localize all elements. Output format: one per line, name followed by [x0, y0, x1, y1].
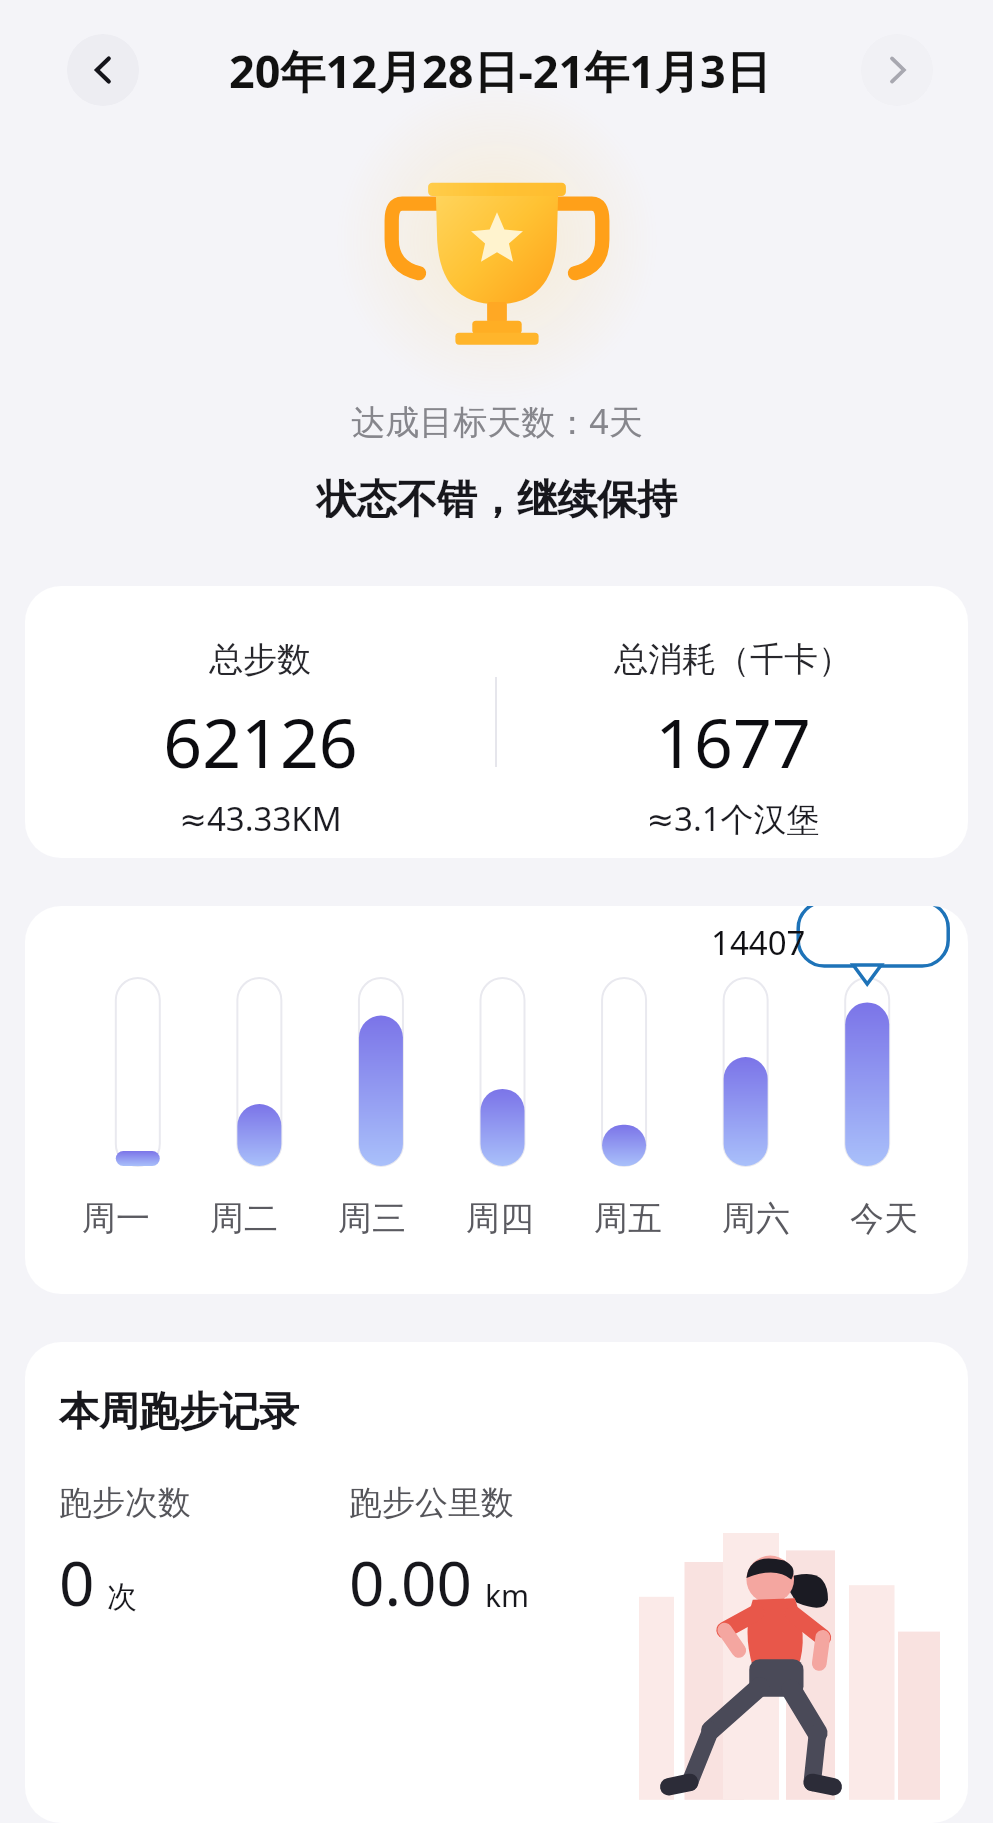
button[interactable]: Previous week	[67, 34, 139, 106]
staticText: 本周跑步记录	[59, 1386, 299, 1436]
button[interactable]: 本周跑步记录	[25, 1342, 968, 1823]
button[interactable]: 总步数	[25, 586, 968, 858]
button[interactable]: Next week	[861, 34, 933, 106]
staticText: 达成目标天数：4天	[351, 398, 643, 444]
staticText: 周六	[722, 1197, 790, 1240]
staticText: 周二	[210, 1197, 278, 1240]
staticText: 次	[107, 1578, 137, 1616]
staticText: 0.00	[349, 1540, 473, 1624]
staticText: 跑步公里数	[349, 1482, 514, 1524]
staticText: 今天	[850, 1197, 918, 1240]
staticText: 总步数	[209, 638, 311, 681]
staticText: 62126	[163, 695, 358, 788]
staticText: 总消耗（千卡）	[614, 638, 852, 681]
staticText: ≈43.33KM	[179, 796, 342, 841]
staticText: 周三	[338, 1197, 406, 1240]
button[interactable]: 14407	[25, 906, 968, 1294]
staticText: 周五	[594, 1197, 662, 1240]
staticText: ≈3.1个汉堡	[646, 796, 820, 841]
staticText: 状态不错，继续保持	[317, 474, 677, 524]
staticText: 周一	[82, 1197, 150, 1240]
staticText: 14407	[711, 920, 806, 965]
staticText: 20年12月28日-21年1月3日	[229, 40, 771, 101]
staticText: 跑步次数	[59, 1482, 191, 1524]
staticText: 1677	[655, 695, 811, 788]
staticText: 周四	[466, 1197, 534, 1240]
staticText: km	[485, 1575, 530, 1616]
staticText: 0	[59, 1540, 95, 1624]
